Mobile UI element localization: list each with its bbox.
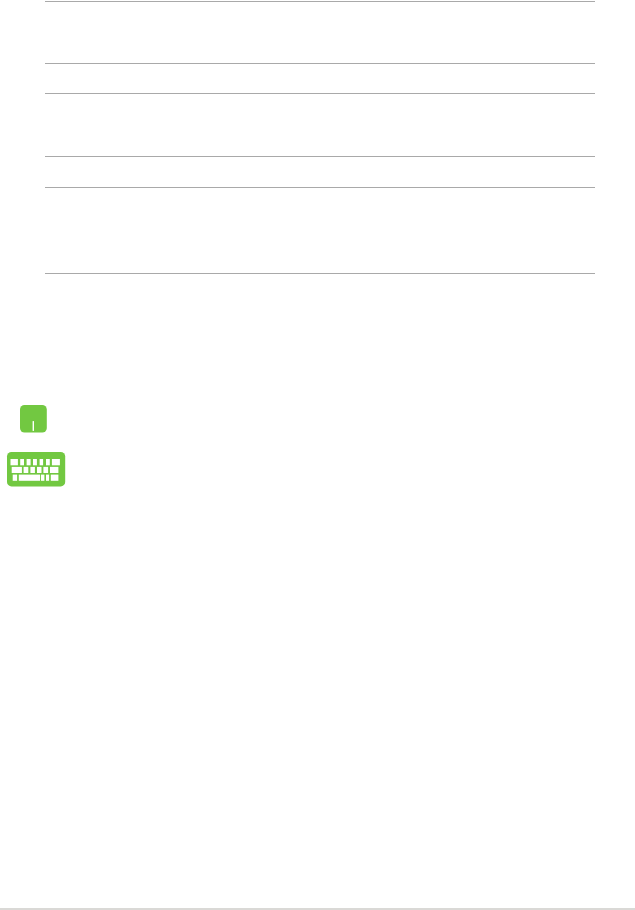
button[interactable]: Touchpad xyxy=(20,405,47,433)
button[interactable]: Keyboard xyxy=(7,452,66,487)
